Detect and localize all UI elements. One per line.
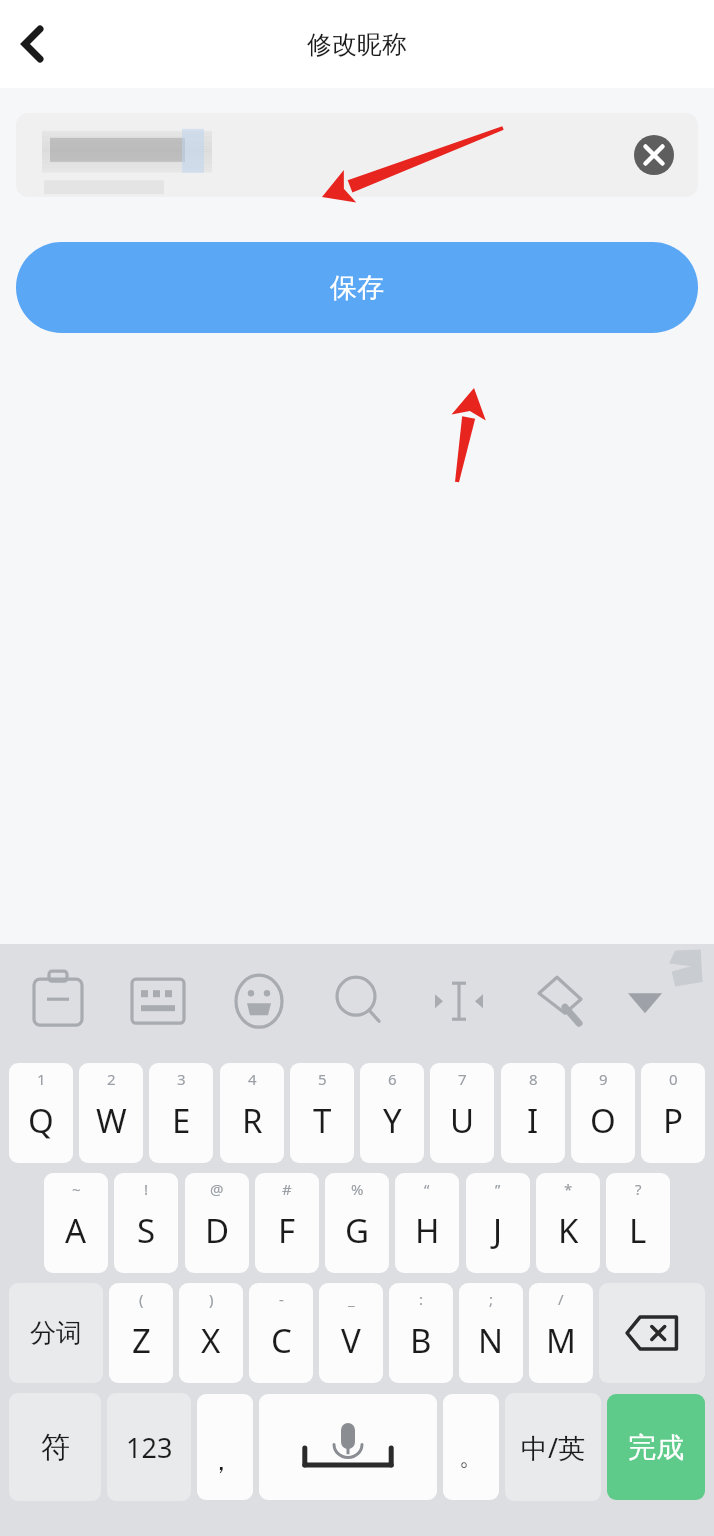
button[interactable]: Keyboard layout	[126, 960, 190, 1034]
staticText: U	[450, 1098, 475, 1143]
button[interactable]: ~	[44, 1173, 108, 1273]
button[interactable]: 5	[290, 1063, 354, 1163]
button[interactable]: @	[185, 1173, 249, 1273]
button[interactable]: %	[325, 1173, 389, 1273]
staticText: Z	[132, 1318, 151, 1363]
staticText: _	[348, 1289, 355, 1309]
button[interactable]: Backspace	[599, 1283, 705, 1383]
button[interactable]: (	[109, 1283, 173, 1383]
staticText: 符	[41, 1429, 70, 1466]
button[interactable]: Clear text	[16, 113, 698, 197]
staticText: D	[205, 1208, 230, 1253]
staticText: W	[96, 1098, 127, 1143]
button[interactable]: 0	[641, 1063, 705, 1163]
staticText: L	[629, 1208, 647, 1253]
staticText: 5	[318, 1069, 327, 1089]
button[interactable]: -	[249, 1283, 313, 1383]
button[interactable]: 保存	[16, 242, 698, 333]
button[interactable]: *	[536, 1173, 600, 1273]
button[interactable]: Theme	[527, 960, 591, 1034]
staticText: A	[65, 1208, 87, 1253]
staticText: M	[546, 1318, 576, 1363]
button[interactable]: ”	[466, 1173, 530, 1273]
staticText: ~	[72, 1179, 81, 1199]
staticText: H	[415, 1208, 440, 1253]
staticText: I	[527, 1098, 539, 1143]
button[interactable]: 2	[79, 1063, 143, 1163]
staticText: 3	[177, 1069, 186, 1089]
staticText: R	[242, 1098, 263, 1143]
button[interactable]: #	[255, 1173, 319, 1273]
button[interactable]: 123	[107, 1393, 191, 1501]
staticText: *	[564, 1179, 573, 1199]
staticText: 。	[459, 1442, 483, 1472]
button[interactable]: 3	[149, 1063, 213, 1163]
staticText: 保存	[330, 271, 384, 305]
staticText: 中/英	[521, 1429, 586, 1466]
staticText: E	[172, 1098, 191, 1143]
staticText: 1	[37, 1069, 46, 1089]
button[interactable]: 1	[9, 1063, 73, 1163]
staticText: 8	[529, 1069, 538, 1089]
staticText: 分词	[30, 1317, 82, 1350]
staticText: F	[278, 1208, 296, 1253]
button[interactable]: !	[114, 1173, 178, 1273]
staticText: (	[139, 1289, 144, 1309]
staticText: P	[663, 1098, 683, 1143]
staticText: T	[313, 1098, 332, 1143]
button[interactable]: ，	[197, 1394, 253, 1500]
button[interactable]: ?	[606, 1173, 670, 1273]
staticText: 4	[248, 1069, 257, 1089]
staticText: N	[478, 1318, 504, 1363]
staticText: 2	[107, 1069, 116, 1089]
staticText: B	[410, 1318, 432, 1363]
button[interactable]: 4	[220, 1063, 284, 1163]
staticText: 完成	[628, 1430, 684, 1465]
button[interactable]: Move cursor	[427, 960, 491, 1034]
button[interactable]: ;	[459, 1283, 523, 1383]
staticText: Q	[28, 1098, 54, 1143]
button[interactable]: 分词	[9, 1283, 103, 1383]
button[interactable]: Space, voice input	[259, 1394, 437, 1500]
button[interactable]: Clipboard	[26, 960, 90, 1034]
staticText: ”	[495, 1179, 501, 1199]
staticText: 9	[599, 1069, 608, 1089]
button[interactable]: 中/英	[505, 1393, 601, 1501]
button[interactable]: 。	[443, 1394, 499, 1500]
button[interactable]: “	[395, 1173, 459, 1273]
button[interactable]: 完成	[607, 1394, 705, 1500]
button[interactable]: Back	[4, 15, 62, 73]
button[interactable]: 9	[571, 1063, 635, 1163]
button[interactable]: :	[389, 1283, 453, 1383]
staticText: 0	[669, 1069, 678, 1089]
staticText: /	[558, 1289, 564, 1309]
button[interactable]: Hide keyboard	[613, 960, 677, 1034]
staticText: )	[209, 1289, 214, 1309]
button[interactable]: 6	[360, 1063, 424, 1163]
button[interactable]: 7	[430, 1063, 494, 1163]
button[interactable]: _	[319, 1283, 383, 1383]
button[interactable]: /	[529, 1283, 593, 1383]
staticText: 7	[458, 1069, 467, 1089]
staticText: ;	[489, 1289, 494, 1309]
staticText: %	[351, 1179, 364, 1199]
staticText: #	[282, 1179, 292, 1199]
staticText: J	[493, 1208, 503, 1253]
button[interactable]: 8	[501, 1063, 565, 1163]
staticText: 6	[388, 1069, 397, 1089]
button[interactable]: 符	[9, 1393, 101, 1501]
staticText: !	[144, 1179, 149, 1199]
staticText: V	[341, 1318, 361, 1363]
button[interactable]: )	[179, 1283, 243, 1383]
staticText: O	[590, 1098, 616, 1143]
staticText: :	[419, 1289, 424, 1309]
staticText: G	[345, 1208, 370, 1253]
button[interactable]: Clear text	[628, 129, 680, 181]
button[interactable]: Search	[328, 960, 392, 1034]
staticText: X	[201, 1318, 221, 1363]
staticText: ，	[208, 1445, 234, 1478]
staticText: ?	[635, 1179, 642, 1199]
staticText: Y	[383, 1098, 402, 1143]
button[interactable]: Emoji	[227, 960, 291, 1034]
staticText: -	[279, 1289, 284, 1309]
